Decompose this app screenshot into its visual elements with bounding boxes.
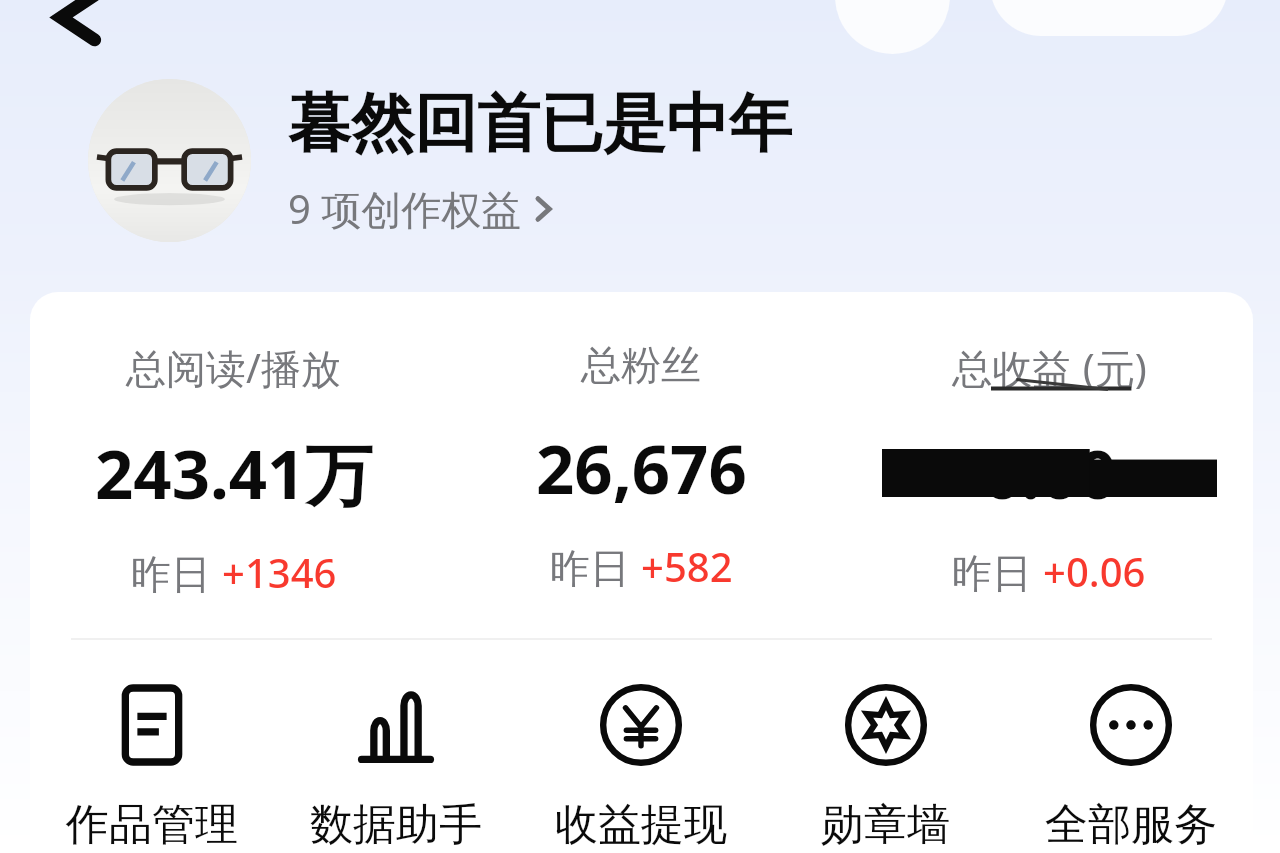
staticText: 全部服务 [1045,798,1217,852]
staticText: 总粉丝 [581,340,701,390]
staticText: 总阅读/播放 [126,340,341,395]
staticText: 243.41万 [95,427,373,519]
staticText: 26,676 [536,422,747,513]
button[interactable]: 作品管理 [30,682,274,852]
staticText: +1346 [222,545,337,599]
button[interactable] [990,0,1228,36]
staticText: 总收益 (元) [952,340,1147,395]
button[interactable]: 总阅读/播放 [30,340,437,600]
button[interactable]: 数据助手 [274,682,518,852]
staticText: 昨日 [952,544,1043,599]
button[interactable]: 勋章墙 [763,682,1008,852]
staticText: 作品管理 [66,798,238,852]
staticText: +582 [641,539,733,593]
staticText: 0.00 [983,427,1117,518]
button[interactable]: 收益提现 [518,682,763,852]
staticText: +0.06 [1043,544,1146,598]
staticText: 9 项创作权益 [288,181,522,236]
button[interactable]: 总收益 (元) [845,340,1253,599]
staticText: 昨日 [550,539,641,594]
staticText: 昨日 [131,545,222,600]
button[interactable]: 全部服务 [1008,682,1253,852]
button[interactable]: Back [40,0,110,44]
button[interactable] [88,79,251,242]
staticText: 勋章墙 [821,798,950,852]
staticText: 收益提现 [555,798,727,852]
staticText: 暮然回首已是中年 [288,84,792,163]
staticText: 数据助手 [310,798,482,852]
button[interactable]: Search [835,0,950,54]
button[interactable]: 总粉丝 [437,340,845,594]
button[interactable]: 9 项创作权益 [288,181,556,236]
